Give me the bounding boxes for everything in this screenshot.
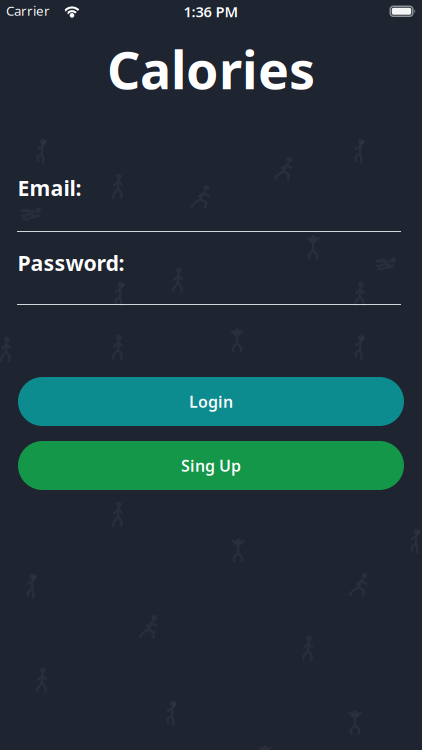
staticText: Login xyxy=(189,391,233,412)
button[interactable]: Sing Up xyxy=(18,441,404,490)
staticText: 1:36 PM xyxy=(183,2,238,21)
staticText: Calories xyxy=(107,34,315,104)
staticText: Sing Up xyxy=(181,455,241,476)
staticText: Email: xyxy=(17,173,81,202)
staticText: Password: xyxy=(17,248,124,277)
button[interactable]: Login xyxy=(18,377,404,426)
staticText: Carrier xyxy=(6,2,50,19)
